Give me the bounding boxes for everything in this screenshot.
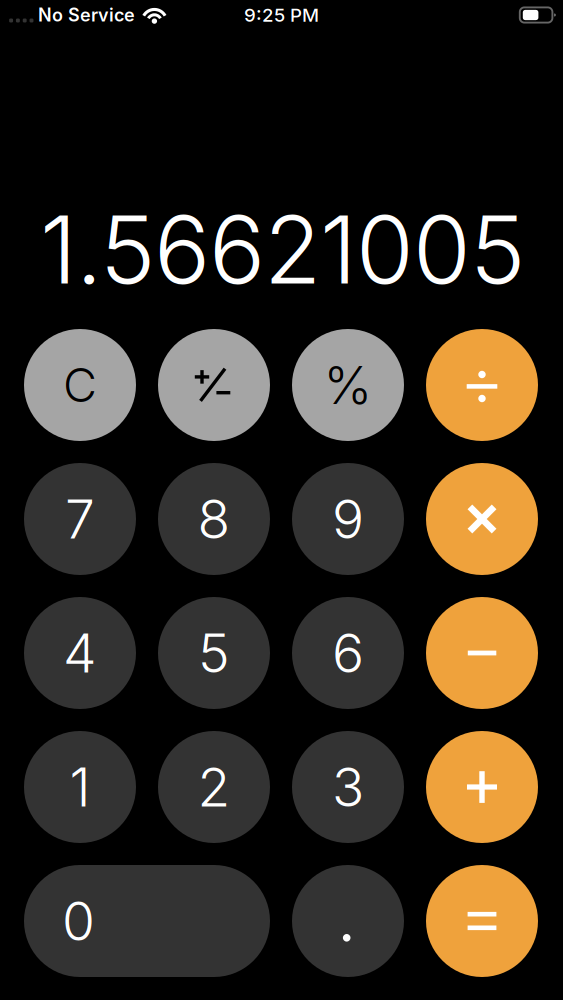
button[interactable]: 2 bbox=[158, 731, 270, 843]
staticText: 9 bbox=[332, 487, 364, 551]
button[interactable]: 9 bbox=[292, 463, 404, 575]
button[interactable]: 3 bbox=[292, 731, 404, 843]
staticText: 6 bbox=[332, 621, 364, 685]
button[interactable]: Divide bbox=[426, 329, 538, 441]
staticText: 8 bbox=[197, 487, 230, 551]
button[interactable]: Plus bbox=[426, 731, 538, 843]
button[interactable]: Decimal point bbox=[292, 865, 404, 977]
button[interactable]: % bbox=[292, 329, 404, 441]
staticText: 2 bbox=[197, 755, 230, 819]
button[interactable]: Multiply bbox=[426, 463, 538, 575]
staticText: 7 bbox=[65, 487, 95, 551]
button[interactable]: Plus minus bbox=[158, 329, 270, 441]
staticText: C bbox=[63, 357, 97, 413]
staticText: % bbox=[323, 353, 372, 416]
staticText: 3 bbox=[332, 755, 364, 819]
button[interactable]: 5 bbox=[158, 597, 270, 709]
staticText: 4 bbox=[63, 621, 97, 685]
staticText: No Service bbox=[38, 4, 135, 26]
staticText: 9:25 PM bbox=[244, 4, 319, 26]
button[interactable]: 1 bbox=[24, 731, 136, 843]
staticText: 1.56621005 bbox=[40, 193, 525, 306]
button[interactable]: Equals bbox=[426, 865, 538, 977]
button[interactable]: C bbox=[24, 329, 136, 441]
button[interactable]: 7 bbox=[24, 463, 136, 575]
button[interactable]: 8 bbox=[158, 463, 270, 575]
button[interactable]: Minus bbox=[426, 597, 538, 709]
button[interactable]: 6 bbox=[292, 597, 404, 709]
staticText: 1 bbox=[69, 755, 90, 819]
button[interactable]: 0 bbox=[24, 865, 270, 977]
button[interactable]: 4 bbox=[24, 597, 136, 709]
staticText: 0 bbox=[62, 889, 95, 953]
staticText: 5 bbox=[198, 621, 230, 685]
